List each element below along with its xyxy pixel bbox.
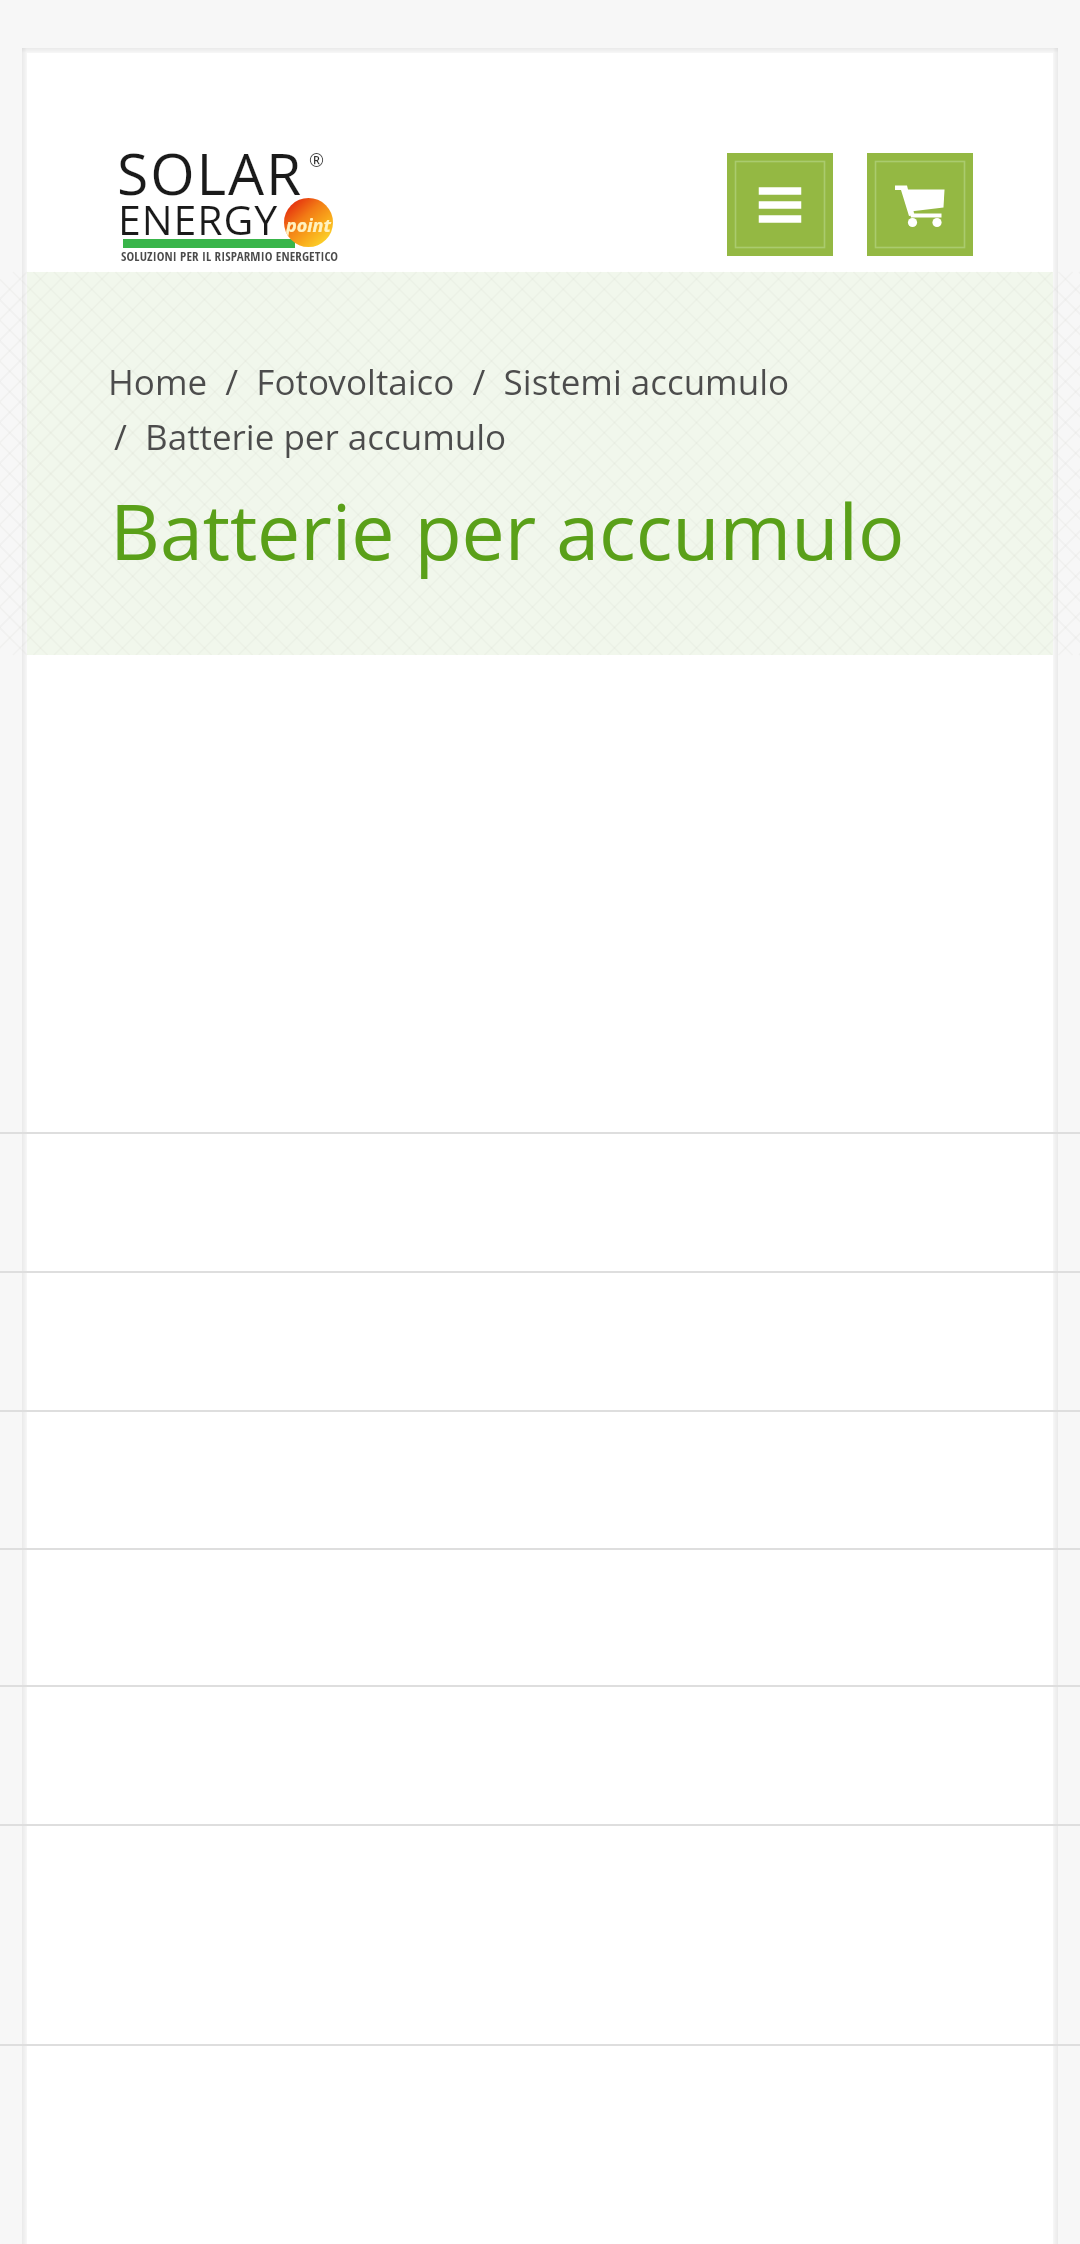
button[interactable]: Menu <box>727 153 833 256</box>
button[interactable]: Solar Energy Point home <box>120 148 350 268</box>
staticText: point <box>286 213 331 238</box>
staticText: Batterie per accumulo <box>110 478 905 583</box>
button[interactable]: / Batterie per accumulo <box>114 413 507 461</box>
staticText: SOLAR <box>117 134 304 212</box>
button[interactable]: Home / Fotovoltaico / Sistemi accumulo <box>108 358 790 406</box>
staticText: ® <box>309 148 324 173</box>
staticText: ENERGY <box>118 191 279 247</box>
button[interactable]: Shopping cart <box>867 153 973 256</box>
staticText: SOLUZIONI PER IL RISPARMIO ENERGETICO <box>121 247 339 265</box>
